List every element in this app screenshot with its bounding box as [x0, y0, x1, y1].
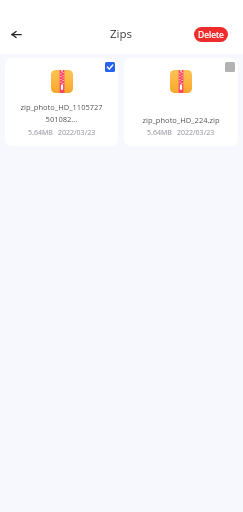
staticText: 5.64MB — [28, 128, 53, 138]
staticText: Delete — [198, 29, 224, 41]
button[interactable]: zip_photo_HD_1105727501082... — [5, 58, 118, 146]
staticText: Zips — [110, 26, 133, 42]
staticText: 5.64MB — [147, 128, 172, 138]
staticText: zip_photo_HD_224.zip — [142, 115, 220, 125]
button[interactable]: Select — [225, 62, 235, 72]
staticText: 2022/03/23 — [58, 128, 96, 138]
button[interactable]: zip_photo_HD_224.zip — [124, 58, 238, 146]
staticText: zip_photo_HD_1105727501082... — [20, 102, 103, 125]
button[interactable]: Back — [5, 23, 27, 45]
button[interactable]: Delete — [194, 27, 228, 42]
button[interactable]: Selected — [105, 62, 115, 72]
staticText: 2022/03/23 — [177, 128, 215, 138]
